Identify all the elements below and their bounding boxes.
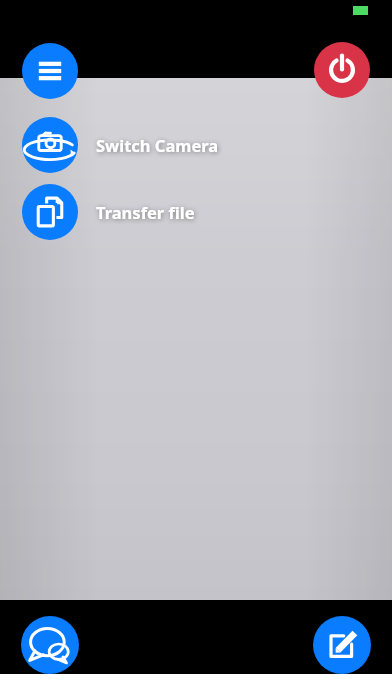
- button[interactable]: Compose: [313, 616, 371, 674]
- staticText: Switch Camera: [96, 134, 219, 156]
- other: Switch Camera: [22, 117, 78, 173]
- button[interactable]: Power off: [314, 42, 370, 98]
- button[interactable]: Chat: [21, 616, 79, 674]
- other: Transfer file: [22, 184, 78, 240]
- button[interactable]: Transfer file: [22, 184, 312, 240]
- button[interactable]: Menu: [22, 43, 78, 99]
- button[interactable]: Switch Camera: [22, 117, 312, 173]
- staticText: Transfer file: [96, 201, 195, 223]
